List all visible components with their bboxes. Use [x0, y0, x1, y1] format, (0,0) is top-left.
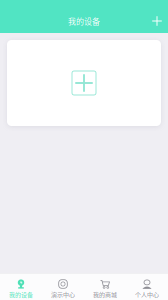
- button[interactable]: 演示中心: [42, 273, 84, 300]
- staticText: 演示中心: [51, 290, 75, 299]
- button[interactable]: 个人中心: [126, 273, 168, 300]
- button[interactable]: Add device: [146, 10, 168, 32]
- staticText: 我的设备: [9, 290, 33, 299]
- button[interactable]: Add a device: [7, 40, 161, 126]
- button[interactable]: 我的商城: [84, 273, 126, 300]
- staticText: 我的设备: [68, 15, 100, 27]
- button[interactable]: 我的设备: [0, 273, 42, 300]
- staticText: 我的商城: [93, 290, 117, 299]
- staticText: 个人中心: [135, 290, 159, 299]
